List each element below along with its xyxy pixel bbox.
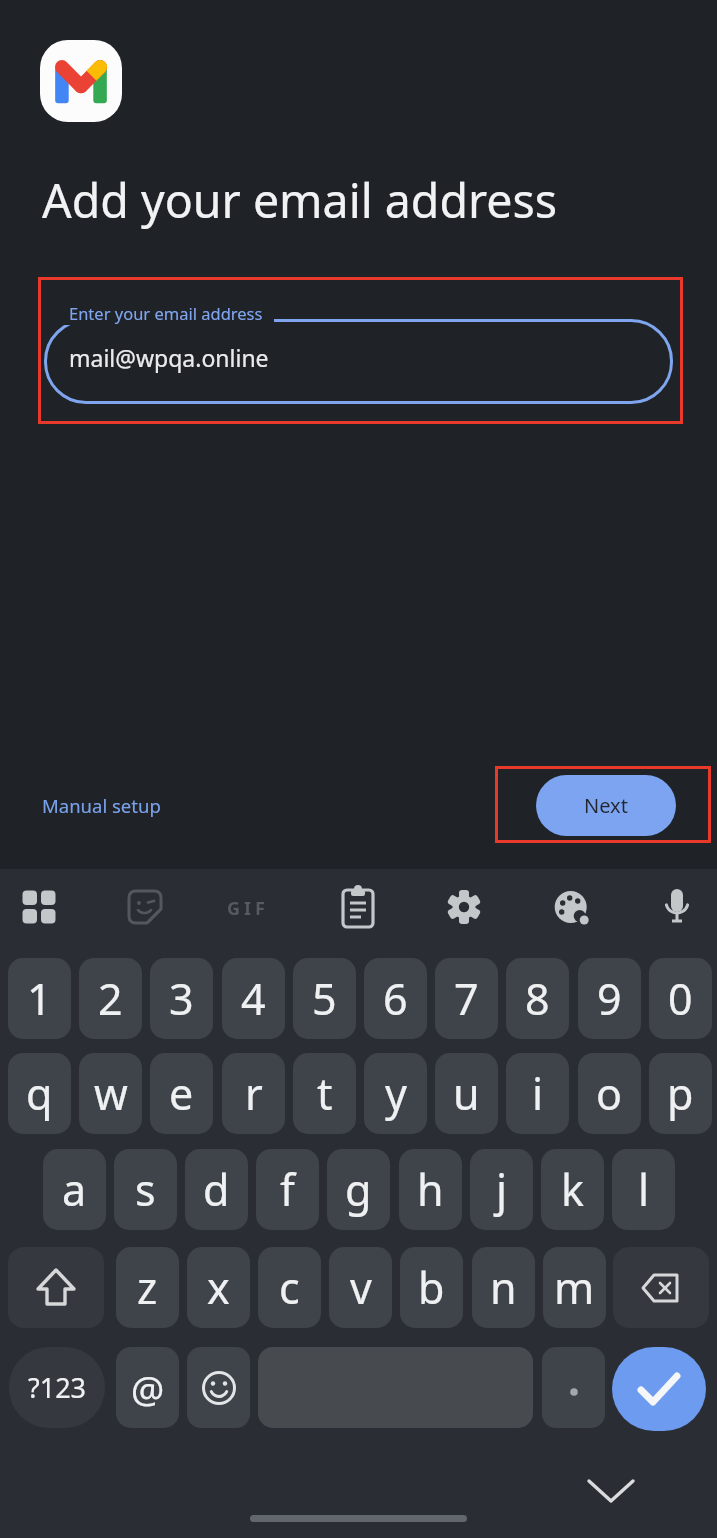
staticText: m [554, 1258, 595, 1317]
button[interactable]: b [400, 1247, 463, 1328]
staticText: y [385, 1064, 407, 1123]
button[interactable]: Next [536, 775, 676, 836]
button[interactable]: 5 [293, 958, 356, 1039]
staticText: r [245, 1064, 263, 1123]
button[interactable]: j [470, 1149, 533, 1230]
button[interactable]: s [114, 1149, 177, 1230]
button[interactable] [542, 1347, 605, 1428]
staticText: x [207, 1258, 230, 1317]
button[interactable]: 4 [222, 958, 285, 1039]
staticText: 9 [597, 969, 622, 1028]
staticText: d [203, 1160, 230, 1219]
staticText: a [62, 1160, 87, 1219]
staticText: q [26, 1064, 53, 1123]
button[interactable]: 3 [150, 958, 213, 1039]
button[interactable]: c [258, 1247, 321, 1328]
staticText: mail@wpqa.online [69, 342, 269, 373]
button[interactable]: 2 [79, 958, 142, 1039]
button[interactable]: q [8, 1053, 71, 1134]
button[interactable]: d [185, 1149, 248, 1230]
button[interactable]: u [435, 1053, 498, 1134]
button[interactable]: p [649, 1053, 712, 1134]
button[interactable]: x [187, 1247, 250, 1328]
staticText: Enter your email address [69, 302, 263, 324]
staticText: Next [584, 792, 628, 819]
staticText: w [94, 1064, 128, 1123]
staticText: ?123 [28, 1369, 87, 1406]
button[interactable]: 1 [8, 958, 71, 1039]
staticText: 4 [241, 969, 266, 1028]
button[interactable] [187, 1347, 250, 1428]
button[interactable]: e [150, 1053, 213, 1134]
staticText: i [532, 1064, 544, 1123]
button[interactable]: w [79, 1053, 142, 1134]
staticText: 0 [668, 969, 693, 1028]
staticText: b [418, 1258, 445, 1317]
staticText: e [169, 1064, 194, 1123]
button[interactable] [587, 1475, 635, 1507]
button[interactable]: GIF [227, 896, 269, 921]
staticText: l [638, 1160, 650, 1219]
button[interactable]: z [116, 1247, 179, 1328]
staticText: t [317, 1064, 333, 1123]
button[interactable]: 9 [578, 958, 641, 1039]
staticText: f [280, 1160, 295, 1219]
button[interactable] [8, 1247, 104, 1328]
button[interactable]: h [399, 1149, 462, 1230]
button[interactable]: r [222, 1053, 285, 1134]
staticText: p [667, 1064, 694, 1123]
button[interactable]: n [472, 1247, 535, 1328]
staticText: 8 [525, 969, 550, 1028]
button[interactable] [44, 319, 673, 404]
staticText: v [350, 1258, 372, 1317]
staticText: j [496, 1160, 508, 1219]
button[interactable]: y [364, 1053, 427, 1134]
button[interactable]: t [293, 1053, 356, 1134]
staticText: s [135, 1160, 156, 1219]
button[interactable]: ?123 [9, 1347, 105, 1428]
staticText: u [453, 1064, 480, 1123]
button[interactable]: f [256, 1149, 319, 1230]
button[interactable]: Manual setup [42, 793, 161, 818]
button[interactable]: @ [116, 1347, 179, 1428]
button[interactable]: 0 [649, 958, 712, 1039]
staticText: @ [131, 1363, 165, 1413]
button[interactable]: 7 [435, 958, 498, 1039]
staticText: c [279, 1258, 300, 1317]
button[interactable]: v [329, 1247, 392, 1328]
staticText: k [561, 1160, 584, 1219]
staticText: 7 [454, 969, 479, 1028]
staticText: h [417, 1160, 444, 1219]
staticText: 2 [98, 969, 123, 1028]
button[interactable] [612, 1347, 706, 1431]
button[interactable]: i [506, 1053, 569, 1134]
button[interactable]: k [541, 1149, 604, 1230]
staticText: 6 [383, 969, 408, 1028]
button[interactable]: 6 [364, 958, 427, 1039]
button[interactable]: a [43, 1149, 106, 1230]
staticText: 1 [27, 969, 52, 1028]
button[interactable]: o [578, 1053, 641, 1134]
button[interactable]: l [612, 1149, 675, 1230]
button[interactable]: m [543, 1247, 606, 1328]
staticText: z [137, 1258, 158, 1317]
staticText: n [490, 1258, 517, 1317]
button[interactable]: 8 [506, 958, 569, 1039]
staticText: g [345, 1160, 372, 1219]
button[interactable] [613, 1247, 709, 1328]
staticText: 5 [312, 969, 337, 1028]
staticText: Add your email address [42, 168, 558, 231]
button[interactable]: g [327, 1149, 390, 1230]
staticText: 3 [169, 969, 194, 1028]
staticText: o [596, 1064, 623, 1123]
